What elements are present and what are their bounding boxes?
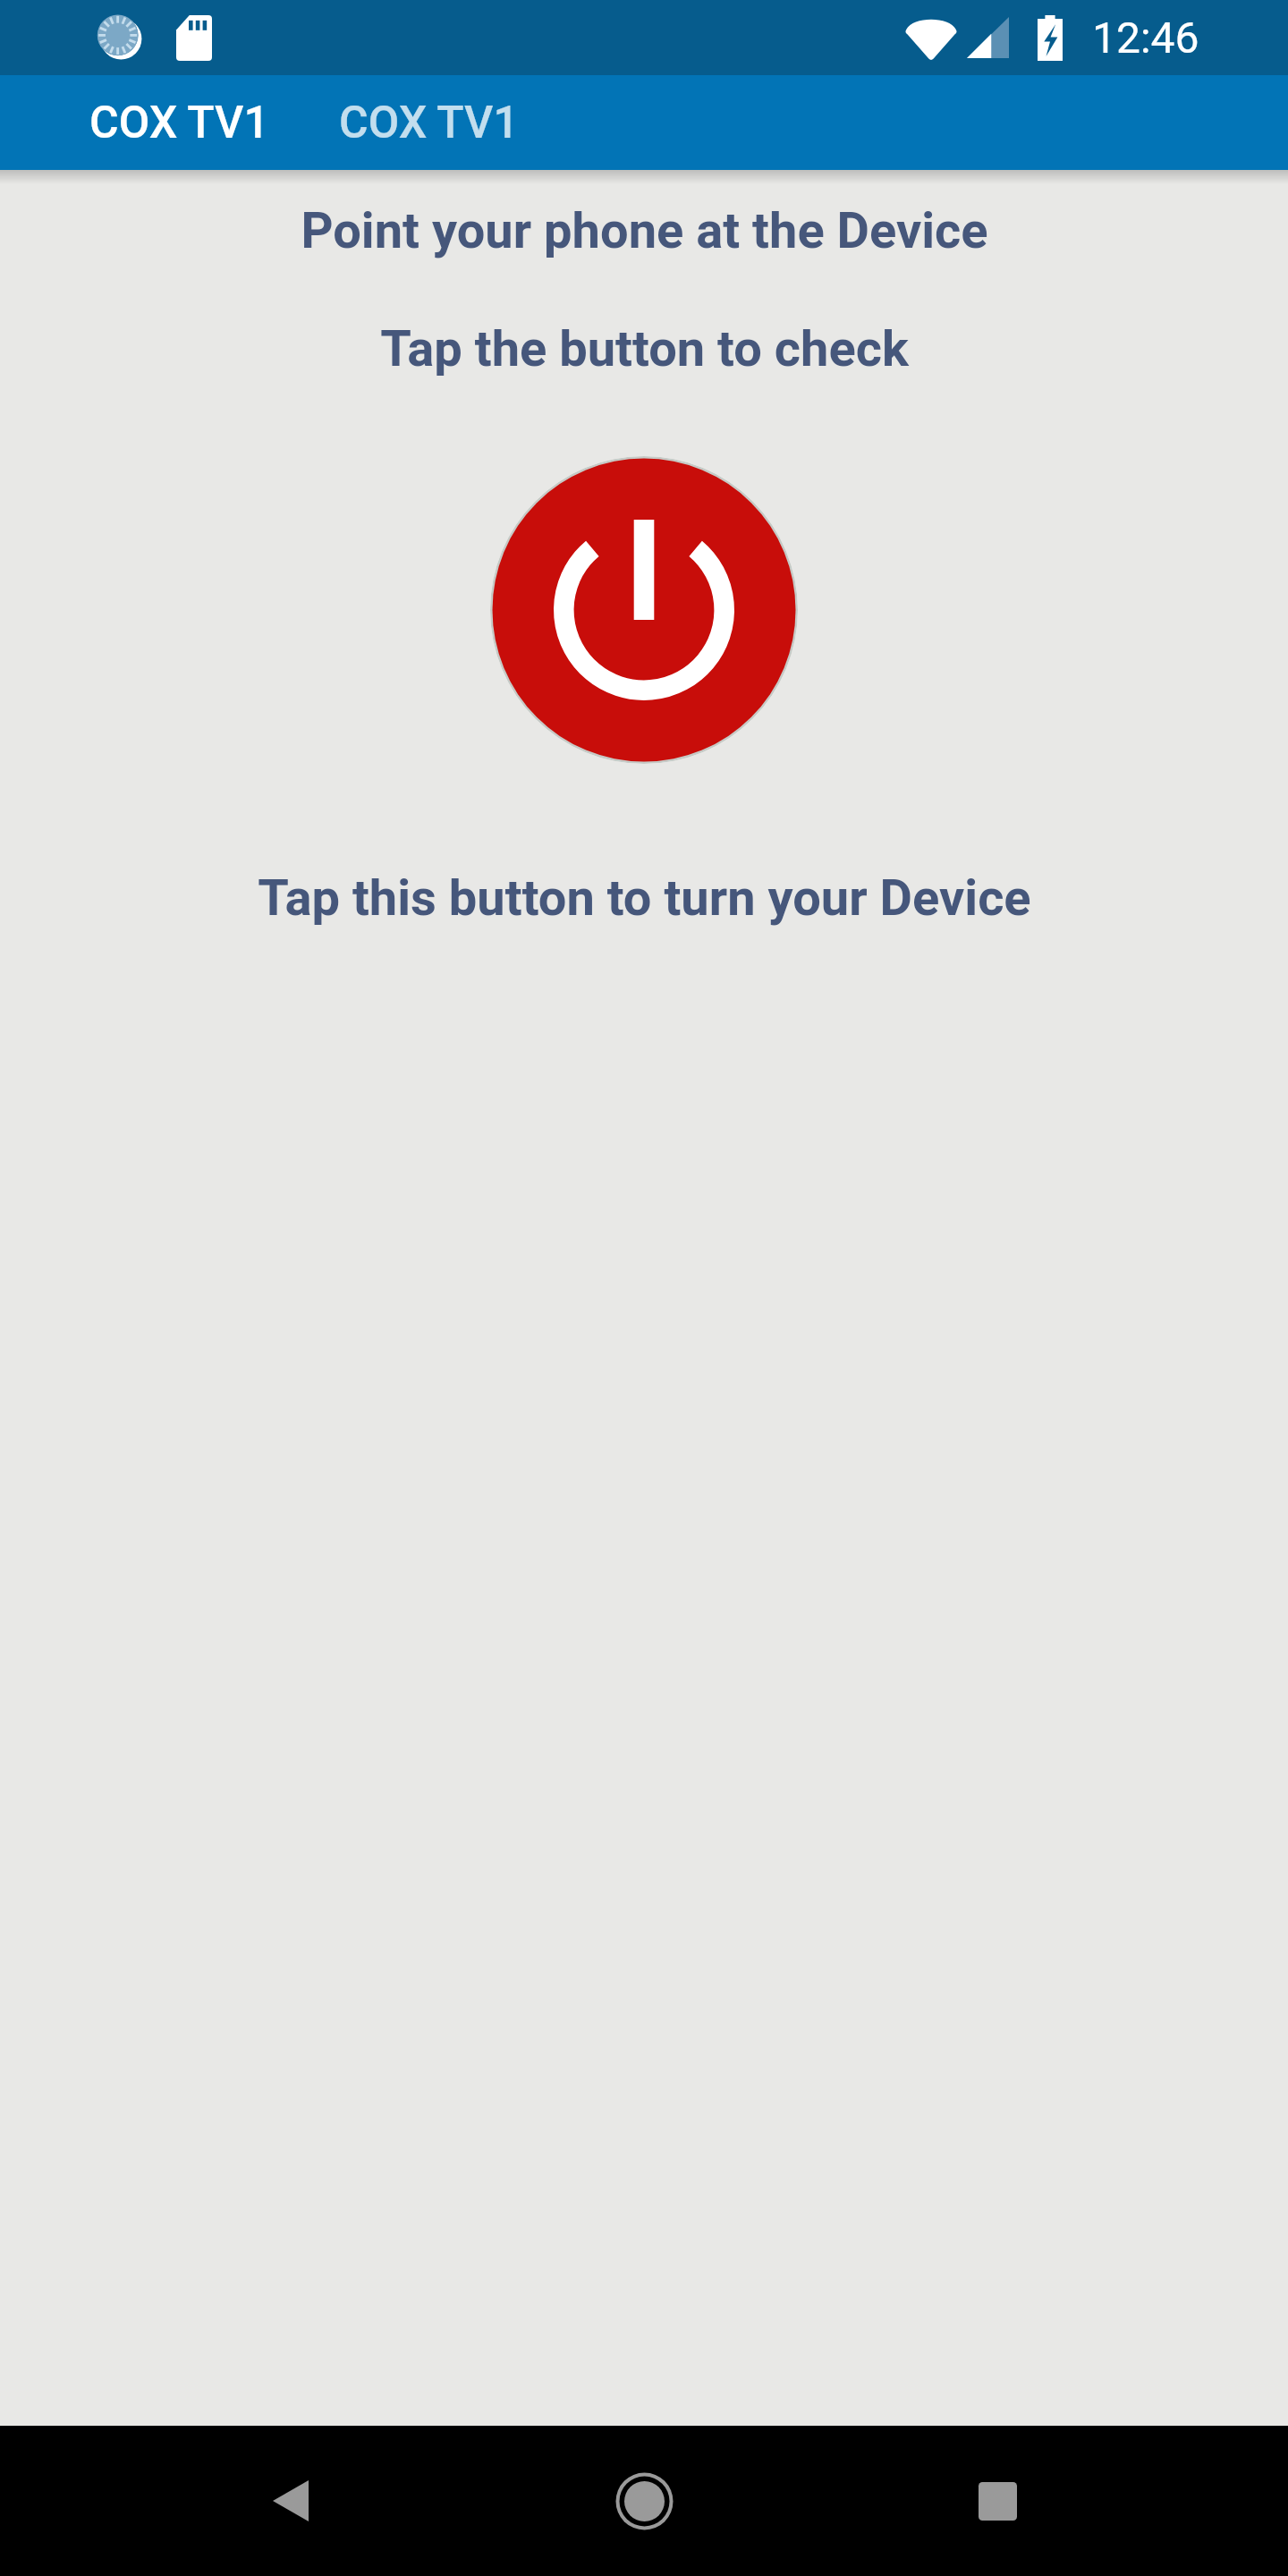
button[interactable]: Power — [490, 456, 798, 764]
staticText: 12:46 — [1092, 13, 1199, 63]
button[interactable]: Home — [581, 2438, 707, 2563]
button[interactable]: Recents — [935, 2438, 1060, 2563]
button[interactable]: COX TV1 — [89, 97, 269, 149]
staticText: Point your phone at the Device — [301, 201, 988, 260]
staticText: Tap the button to check — [380, 319, 909, 378]
button[interactable]: COX TV1 — [339, 97, 519, 149]
staticText: COX TV1 — [89, 97, 269, 149]
button[interactable]: Back — [228, 2438, 353, 2563]
staticText: Tap this button to turn your Device — [258, 869, 1031, 928]
staticText: COX TV1 — [339, 97, 519, 149]
